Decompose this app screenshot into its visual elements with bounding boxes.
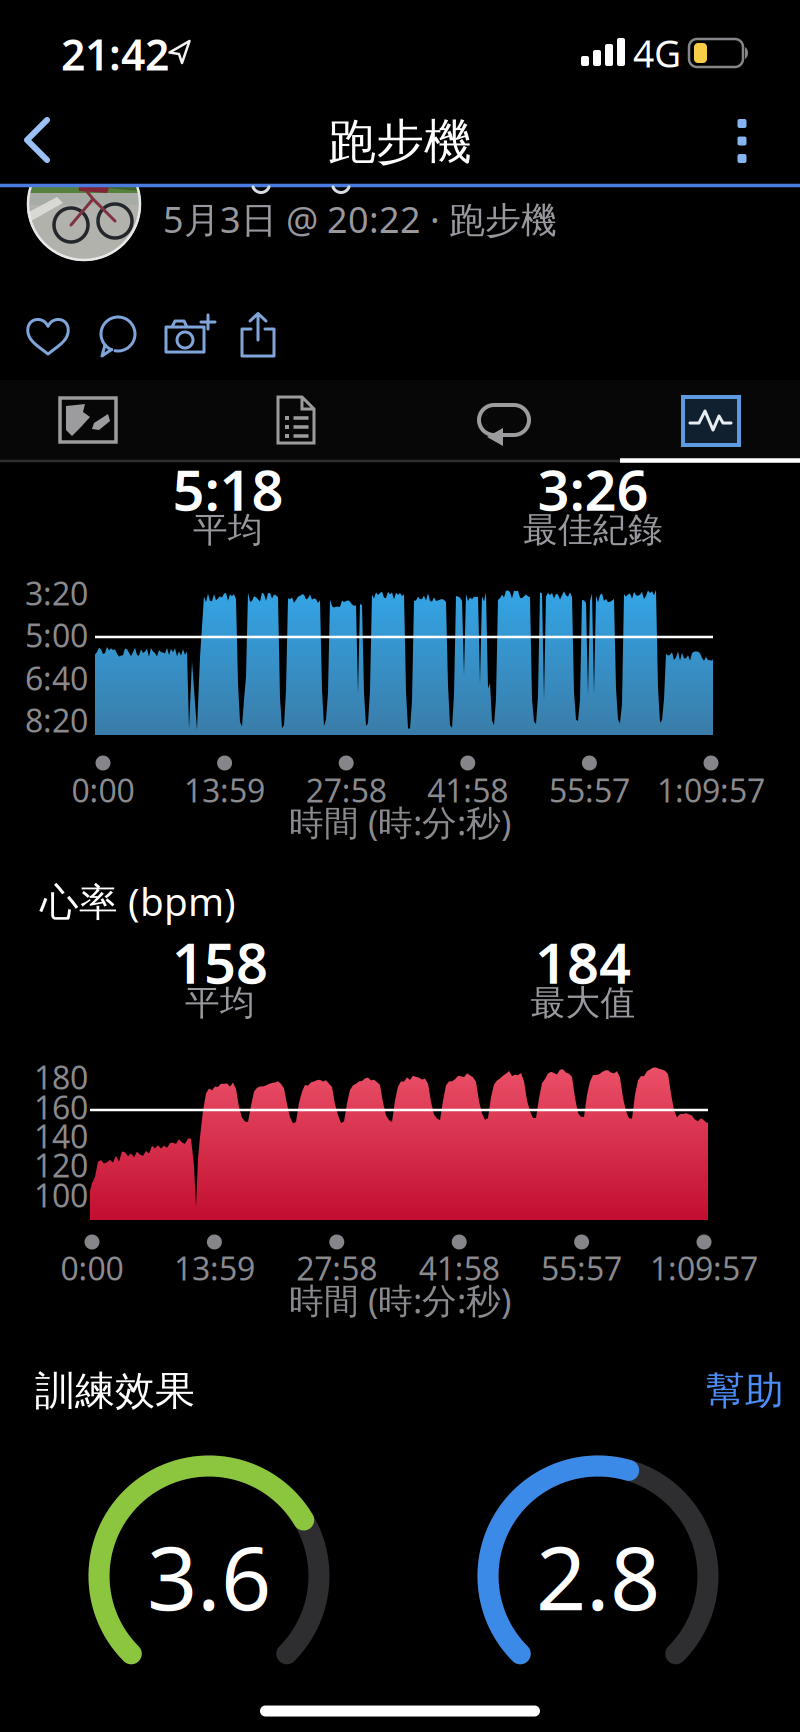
button[interactable]: Charts <box>611 380 800 460</box>
staticText: 0:00 <box>71 769 134 811</box>
staticText: 跑步機 <box>328 112 472 171</box>
staticText: 55:57 <box>541 1247 622 1289</box>
button[interactable]: Stats <box>196 380 396 460</box>
staticText: 5月3日 @ 20:22 · 跑步機 <box>163 195 557 243</box>
staticText: 2.8 <box>536 1518 660 1634</box>
button[interactable]: Share <box>238 312 278 358</box>
staticText: 3:20 <box>25 572 88 614</box>
staticText: 8:20 <box>25 699 88 741</box>
staticText: 平均 <box>193 509 263 551</box>
staticText: 1:09:57 <box>657 769 765 811</box>
staticText: 幫助 <box>706 1367 784 1415</box>
staticText: 27:58 <box>306 769 387 811</box>
staticText: 心率 (bpm) <box>40 875 236 927</box>
button[interactable]: Add photo <box>164 314 214 358</box>
staticText: 訓練效果 <box>35 1366 195 1415</box>
staticText: 13:59 <box>184 769 265 811</box>
staticText: 27:58 <box>296 1247 377 1289</box>
button[interactable]: Photos and map <box>0 380 188 460</box>
button[interactable]: Laps <box>404 380 604 460</box>
staticText: 140 <box>34 1115 88 1157</box>
staticText: 最大值 <box>530 982 635 1024</box>
staticText: 時間 (時:分:秒) <box>289 1277 511 1323</box>
staticText: 180 <box>34 1056 88 1098</box>
staticText: 最佳紀錄 <box>523 509 663 551</box>
staticText: 5:00 <box>25 614 88 656</box>
button[interactable]: Like <box>25 315 71 357</box>
staticText: 3.6 <box>147 1518 271 1634</box>
staticText: 21:42 <box>61 26 169 82</box>
button[interactable]: More <box>720 115 764 167</box>
staticText: 13:59 <box>174 1247 255 1289</box>
button[interactable]: 幫助 <box>706 1367 784 1415</box>
button[interactable]: Back <box>20 116 64 164</box>
staticText: 41:58 <box>419 1247 500 1289</box>
staticText: 41:58 <box>427 769 508 811</box>
staticText: 158 <box>172 925 268 999</box>
staticText: 120 <box>34 1144 88 1186</box>
button[interactable]: Comment <box>96 314 140 358</box>
staticText: 4G <box>633 28 681 78</box>
staticText: 160 <box>34 1086 88 1128</box>
staticText: 6:40 <box>25 657 88 699</box>
staticText: 55:57 <box>549 769 630 811</box>
staticText: 3:26 <box>537 452 648 526</box>
staticText: 100 <box>34 1174 88 1216</box>
staticText: 0:00 <box>60 1247 123 1289</box>
staticText: 184 <box>535 925 631 999</box>
staticText: 時間 (時:分:秒) <box>289 799 511 845</box>
staticText: 平均 <box>185 982 255 1024</box>
staticText: 5:18 <box>172 452 283 526</box>
staticText: 1:09:57 <box>650 1247 758 1289</box>
